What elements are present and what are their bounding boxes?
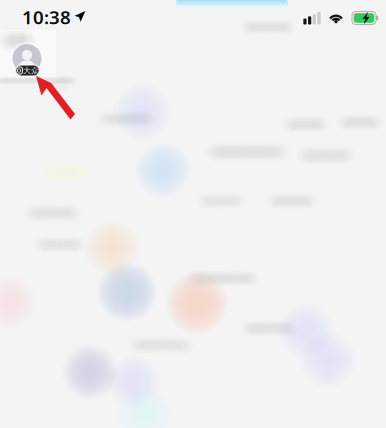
button[interactable]: Profile marker <box>9 43 45 83</box>
staticText: 大众 <box>23 66 39 75</box>
staticText: 10:38 <box>22 5 71 29</box>
